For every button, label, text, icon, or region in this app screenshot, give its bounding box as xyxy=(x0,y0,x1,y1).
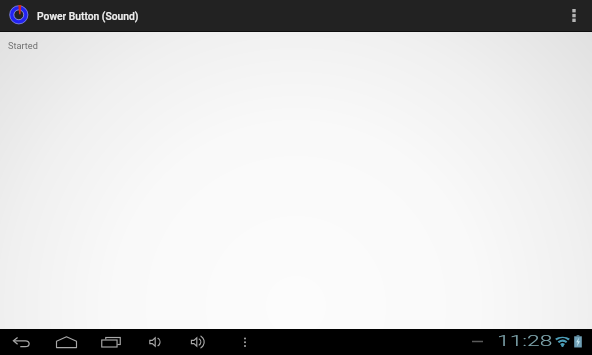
staticText: Power Button (Sound) xyxy=(37,10,139,22)
button[interactable]: Recent apps xyxy=(97,329,125,355)
button[interactable]: Volume up xyxy=(185,329,213,355)
button[interactable]: More options xyxy=(556,0,592,31)
button[interactable]: Menu xyxy=(231,329,259,355)
staticText: Started xyxy=(8,40,38,51)
staticText: 11:28 xyxy=(497,332,553,350)
button[interactable]: Volume down xyxy=(142,329,170,355)
button[interactable]: Home xyxy=(52,329,80,355)
button[interactable]: Back xyxy=(8,329,36,355)
